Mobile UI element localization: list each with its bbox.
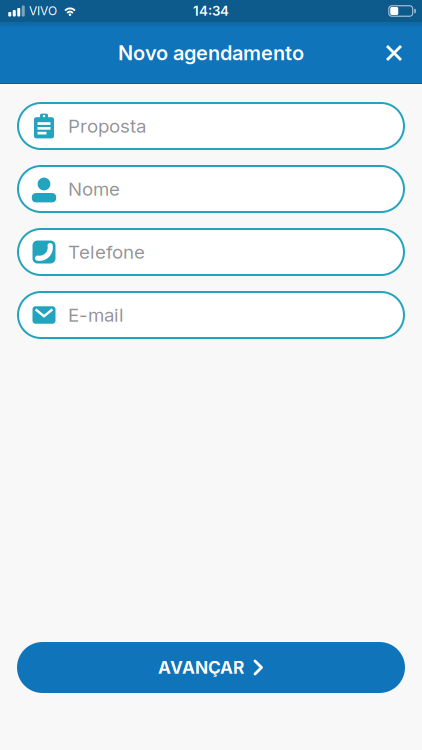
button[interactable]: Nome bbox=[17, 165, 405, 213]
staticText: Proposta bbox=[68, 115, 146, 137]
button[interactable]: AVANÇAR bbox=[17, 642, 405, 693]
staticText: E-mail bbox=[68, 304, 124, 326]
staticText: Nome bbox=[68, 178, 120, 200]
button[interactable]: E-mail bbox=[17, 291, 405, 339]
staticText: Telefone bbox=[68, 241, 145, 263]
staticText: Novo agendamento bbox=[118, 41, 304, 65]
button[interactable]: Telefone bbox=[17, 228, 405, 276]
staticText: AVANÇAR bbox=[158, 657, 244, 678]
staticText: 14:34 bbox=[193, 3, 229, 19]
staticText: VIVO bbox=[29, 4, 57, 18]
button[interactable]: Proposta bbox=[17, 102, 405, 150]
button[interactable]: Close bbox=[374, 33, 414, 73]
